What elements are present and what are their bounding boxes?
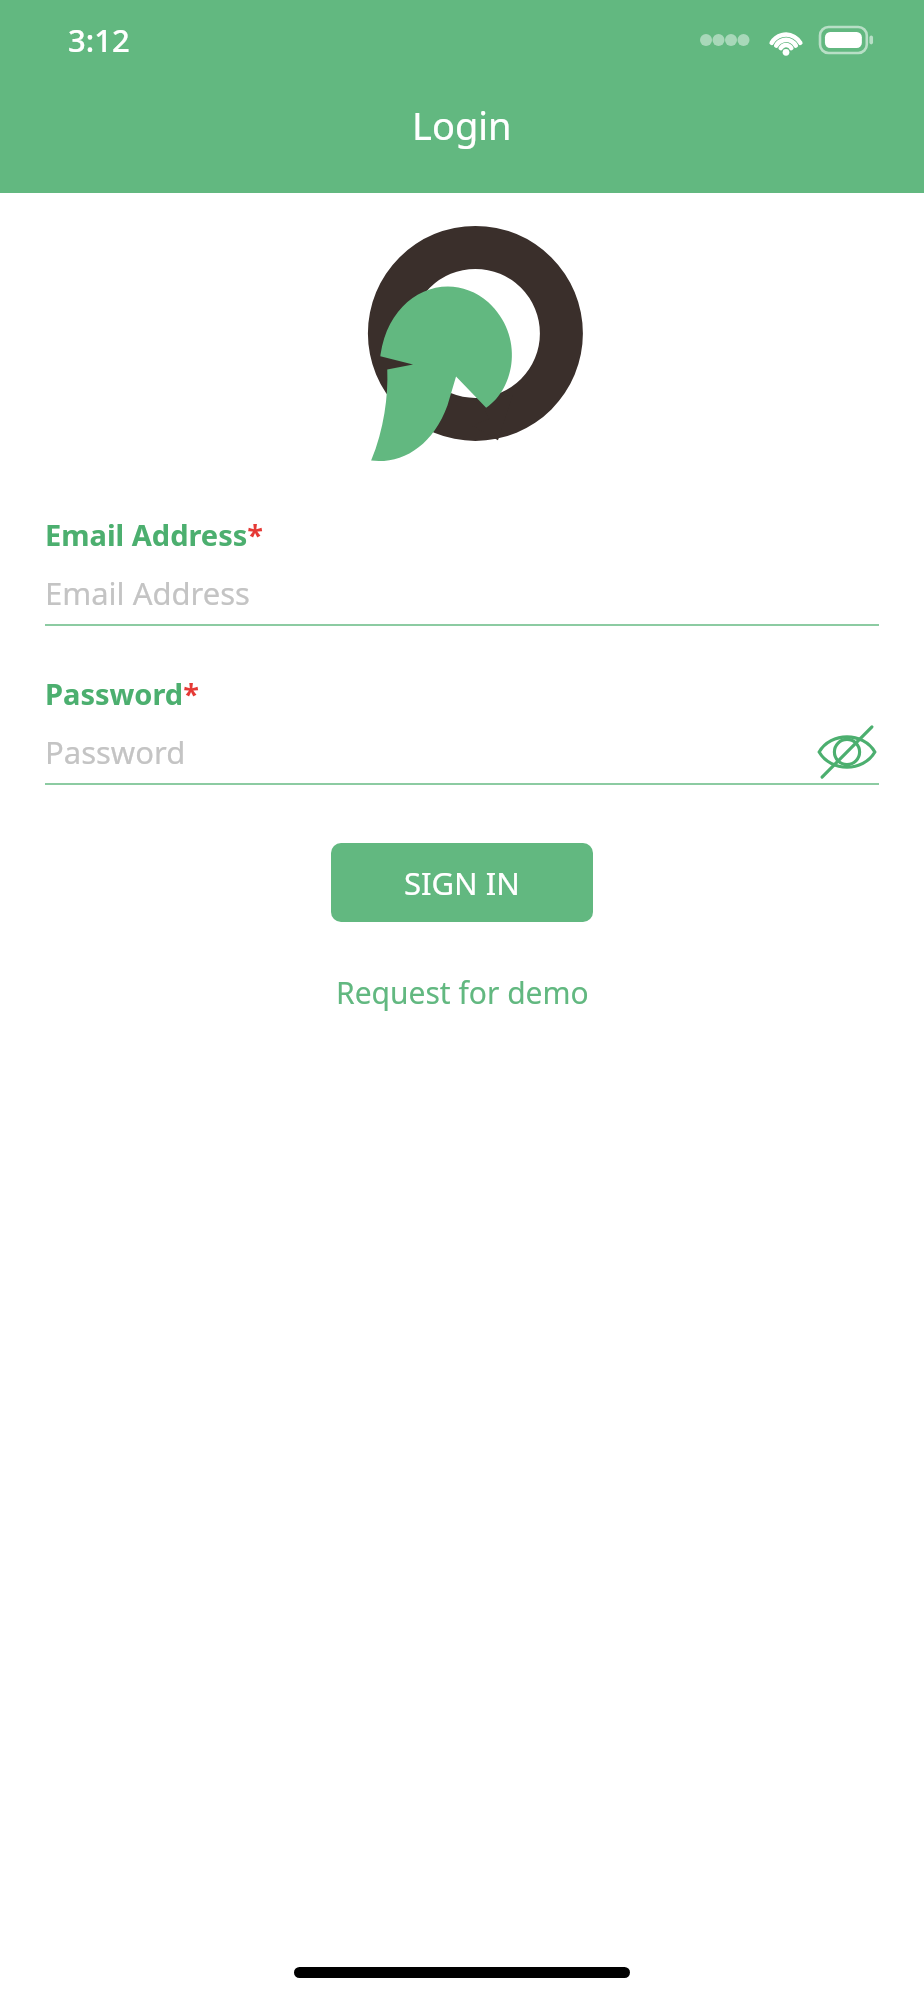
staticText: Password* bbox=[45, 674, 199, 713]
staticText: Email Address bbox=[45, 572, 250, 614]
button[interactable]: SIGN IN bbox=[331, 843, 593, 922]
staticText: Request for demo bbox=[336, 972, 589, 1013]
staticText: 3:12 bbox=[68, 19, 130, 61]
staticText: SIGN IN bbox=[404, 862, 520, 904]
button[interactable]: Email Address* bbox=[45, 515, 879, 626]
button[interactable]: Show password bbox=[815, 727, 879, 777]
button[interactable]: Password* bbox=[45, 674, 879, 785]
staticText: Login bbox=[412, 99, 512, 151]
button[interactable]: Request for demo bbox=[324, 966, 601, 1019]
staticText: Email Address* bbox=[45, 515, 263, 554]
staticText: Password bbox=[45, 731, 186, 773]
